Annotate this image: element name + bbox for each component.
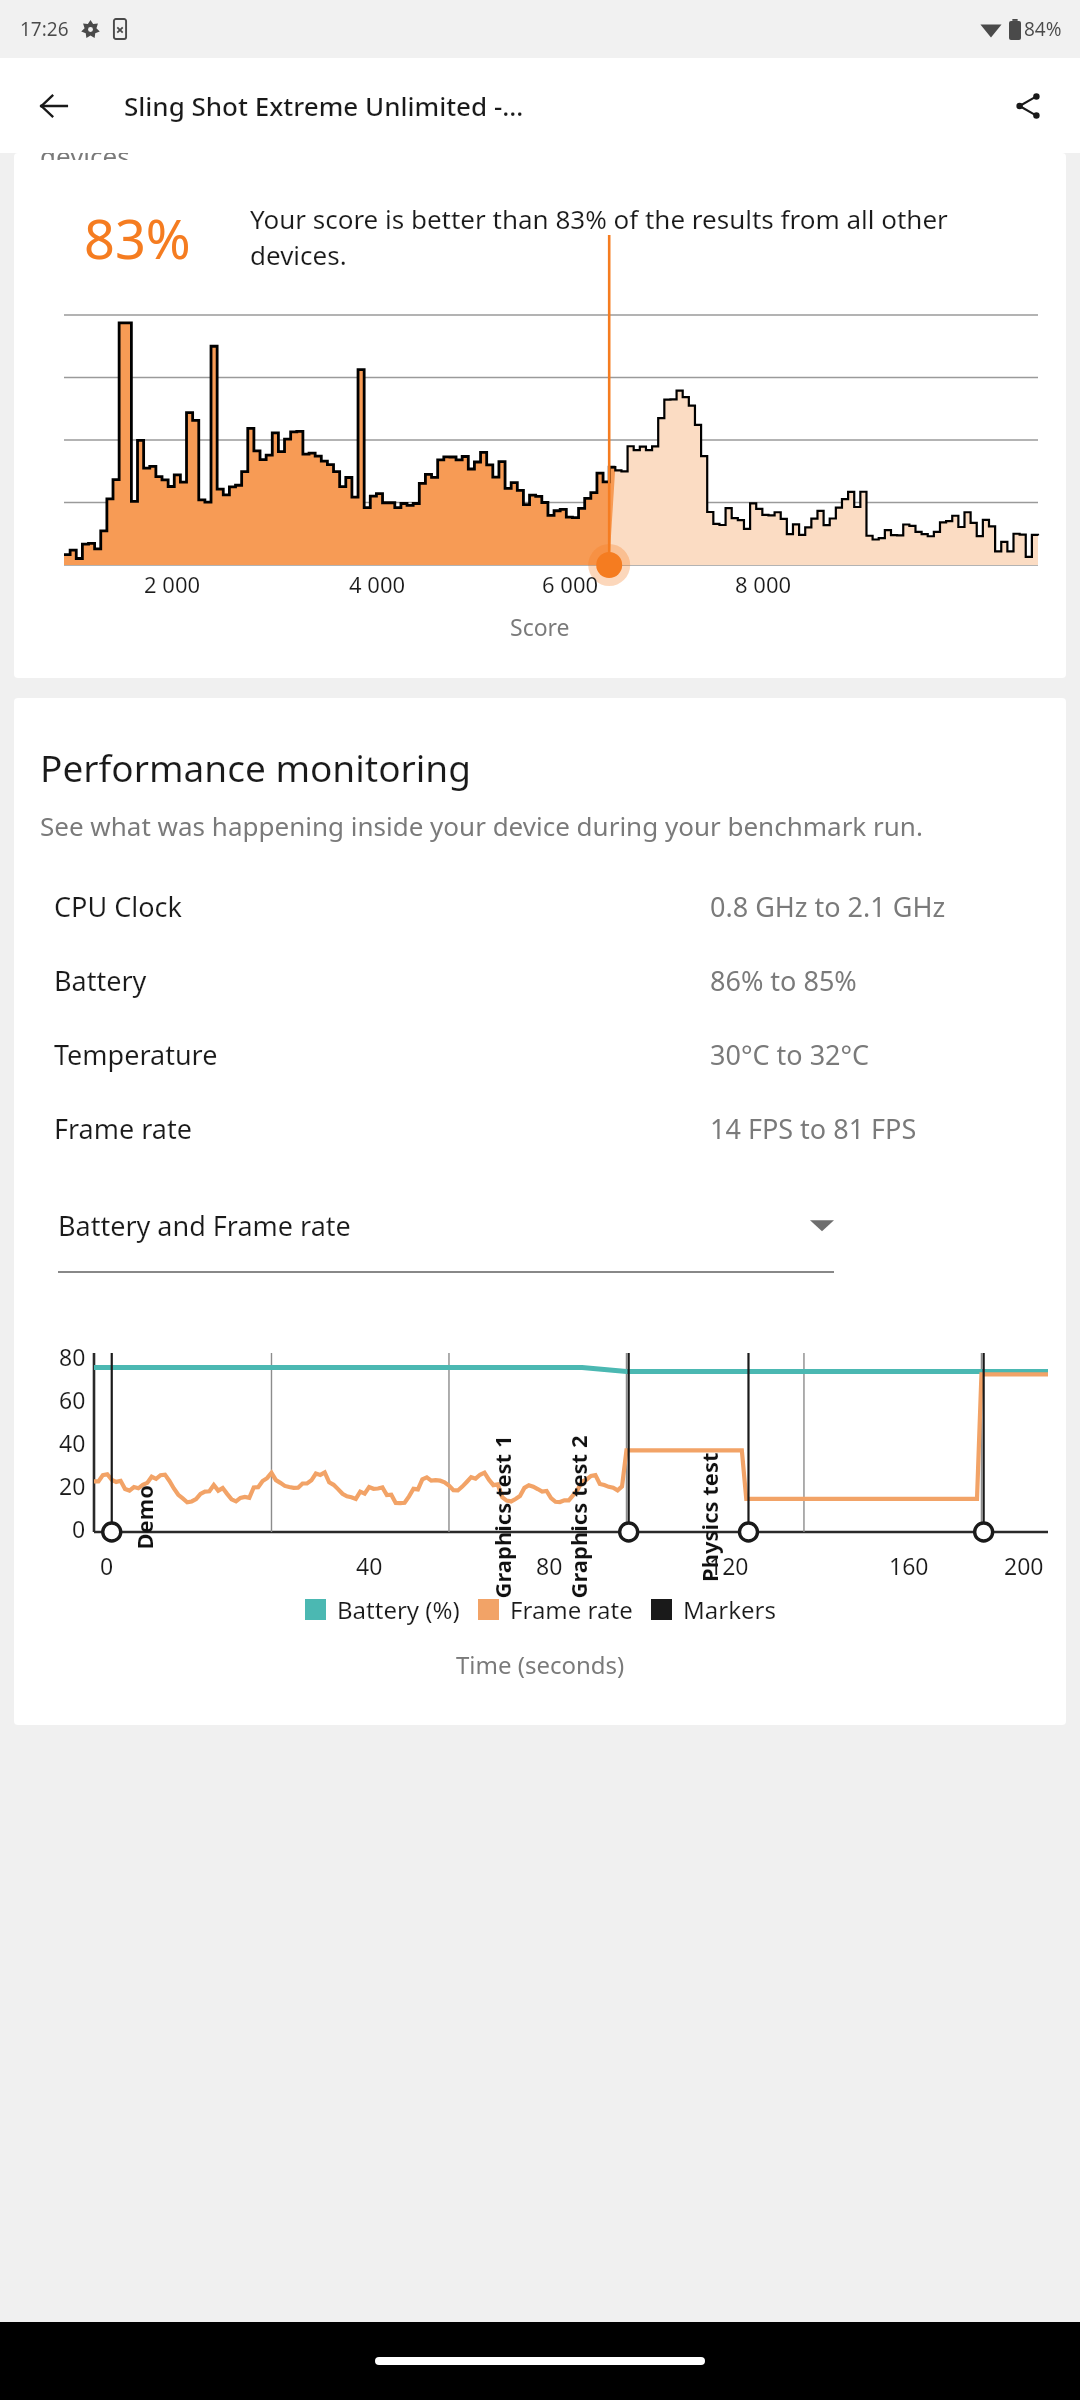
staticText: Battery xyxy=(54,962,147,999)
staticText: Sling Shot Extreme Unlimited -… xyxy=(124,88,524,123)
staticText: 20 xyxy=(59,1470,86,1501)
button[interactable]: Share xyxy=(990,68,1066,144)
staticText: Battery (%) xyxy=(337,1593,460,1626)
staticText: Time (seconds) xyxy=(456,1648,625,1681)
staticText: devices. xyxy=(40,153,137,160)
staticText: Demo xyxy=(128,1484,158,1549)
staticText: Frame rate xyxy=(510,1593,633,1626)
staticText: Graphics test 1 xyxy=(486,1435,516,1598)
staticText: 30°C to 32°C xyxy=(710,1036,870,1073)
staticText: See what was happening inside your devic… xyxy=(40,808,923,843)
staticText: 86% to 85% xyxy=(710,962,857,999)
button[interactable]: CPU Clock xyxy=(14,869,1066,943)
staticText: 80 xyxy=(59,1341,86,1372)
staticText: 0 xyxy=(100,1550,114,1581)
staticText: Markers xyxy=(683,1593,776,1626)
button[interactable]: Battery xyxy=(14,943,1066,1017)
staticText: 0 xyxy=(72,1513,86,1544)
staticText: 120 xyxy=(709,1550,749,1581)
staticText: 200 xyxy=(1004,1550,1044,1581)
staticText: 14 FPS to 81 FPS xyxy=(710,1110,917,1147)
staticText: 40 xyxy=(59,1427,86,1458)
staticText: 8 000 xyxy=(735,569,792,599)
staticText: 84% xyxy=(1024,16,1062,42)
staticText: 160 xyxy=(889,1550,929,1581)
staticText: Battery and Frame rate xyxy=(58,1207,351,1244)
button[interactable]: Battery and Frame rate xyxy=(58,1193,834,1273)
staticText: Frame rate xyxy=(54,1110,192,1147)
button[interactable]: Back xyxy=(16,68,92,144)
staticText: 60 xyxy=(59,1384,86,1415)
staticText: 6 000 xyxy=(542,569,599,599)
button[interactable]: Frame rate xyxy=(14,1091,1066,1165)
staticText: 17:26 xyxy=(20,16,69,42)
staticText: Temperature xyxy=(54,1036,218,1073)
staticText: 0.8 GHz to 2.1 GHz xyxy=(710,888,946,925)
staticText: 40 xyxy=(356,1550,383,1581)
button[interactable]: Temperature xyxy=(14,1017,1066,1091)
staticText: CPU Clock xyxy=(54,888,182,925)
staticText: Graphics test 2 xyxy=(562,1435,592,1598)
staticText: Your score is better than 83% of the res… xyxy=(250,201,1038,273)
staticText: Performance monitoring xyxy=(40,742,471,792)
staticText: Score xyxy=(510,611,570,642)
staticText: 4 000 xyxy=(349,569,406,599)
staticText: 83% xyxy=(84,201,191,275)
staticText: 80 xyxy=(536,1550,563,1581)
staticText: Physics test xyxy=(694,1452,724,1582)
staticText: 2 000 xyxy=(144,569,201,599)
